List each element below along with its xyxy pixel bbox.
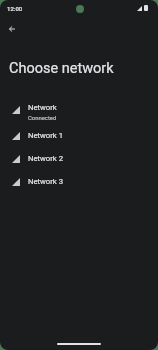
staticText: Network bbox=[28, 103, 57, 112]
button[interactable]: Network 2 bbox=[0, 147, 158, 170]
staticText: Connected bbox=[28, 115, 57, 122]
button[interactable]: Network 1 bbox=[0, 124, 158, 147]
staticText: Network 1 bbox=[28, 131, 63, 140]
staticText: 12:00 bbox=[7, 5, 23, 12]
staticText: Network 2 bbox=[28, 154, 63, 163]
button[interactable]: Network 3 bbox=[0, 170, 158, 193]
staticText: Network 3 bbox=[28, 177, 63, 186]
button[interactable]: Network bbox=[0, 96, 158, 124]
button[interactable]: Navigate up bbox=[1, 18, 23, 40]
staticText: Choose network bbox=[9, 60, 114, 77]
